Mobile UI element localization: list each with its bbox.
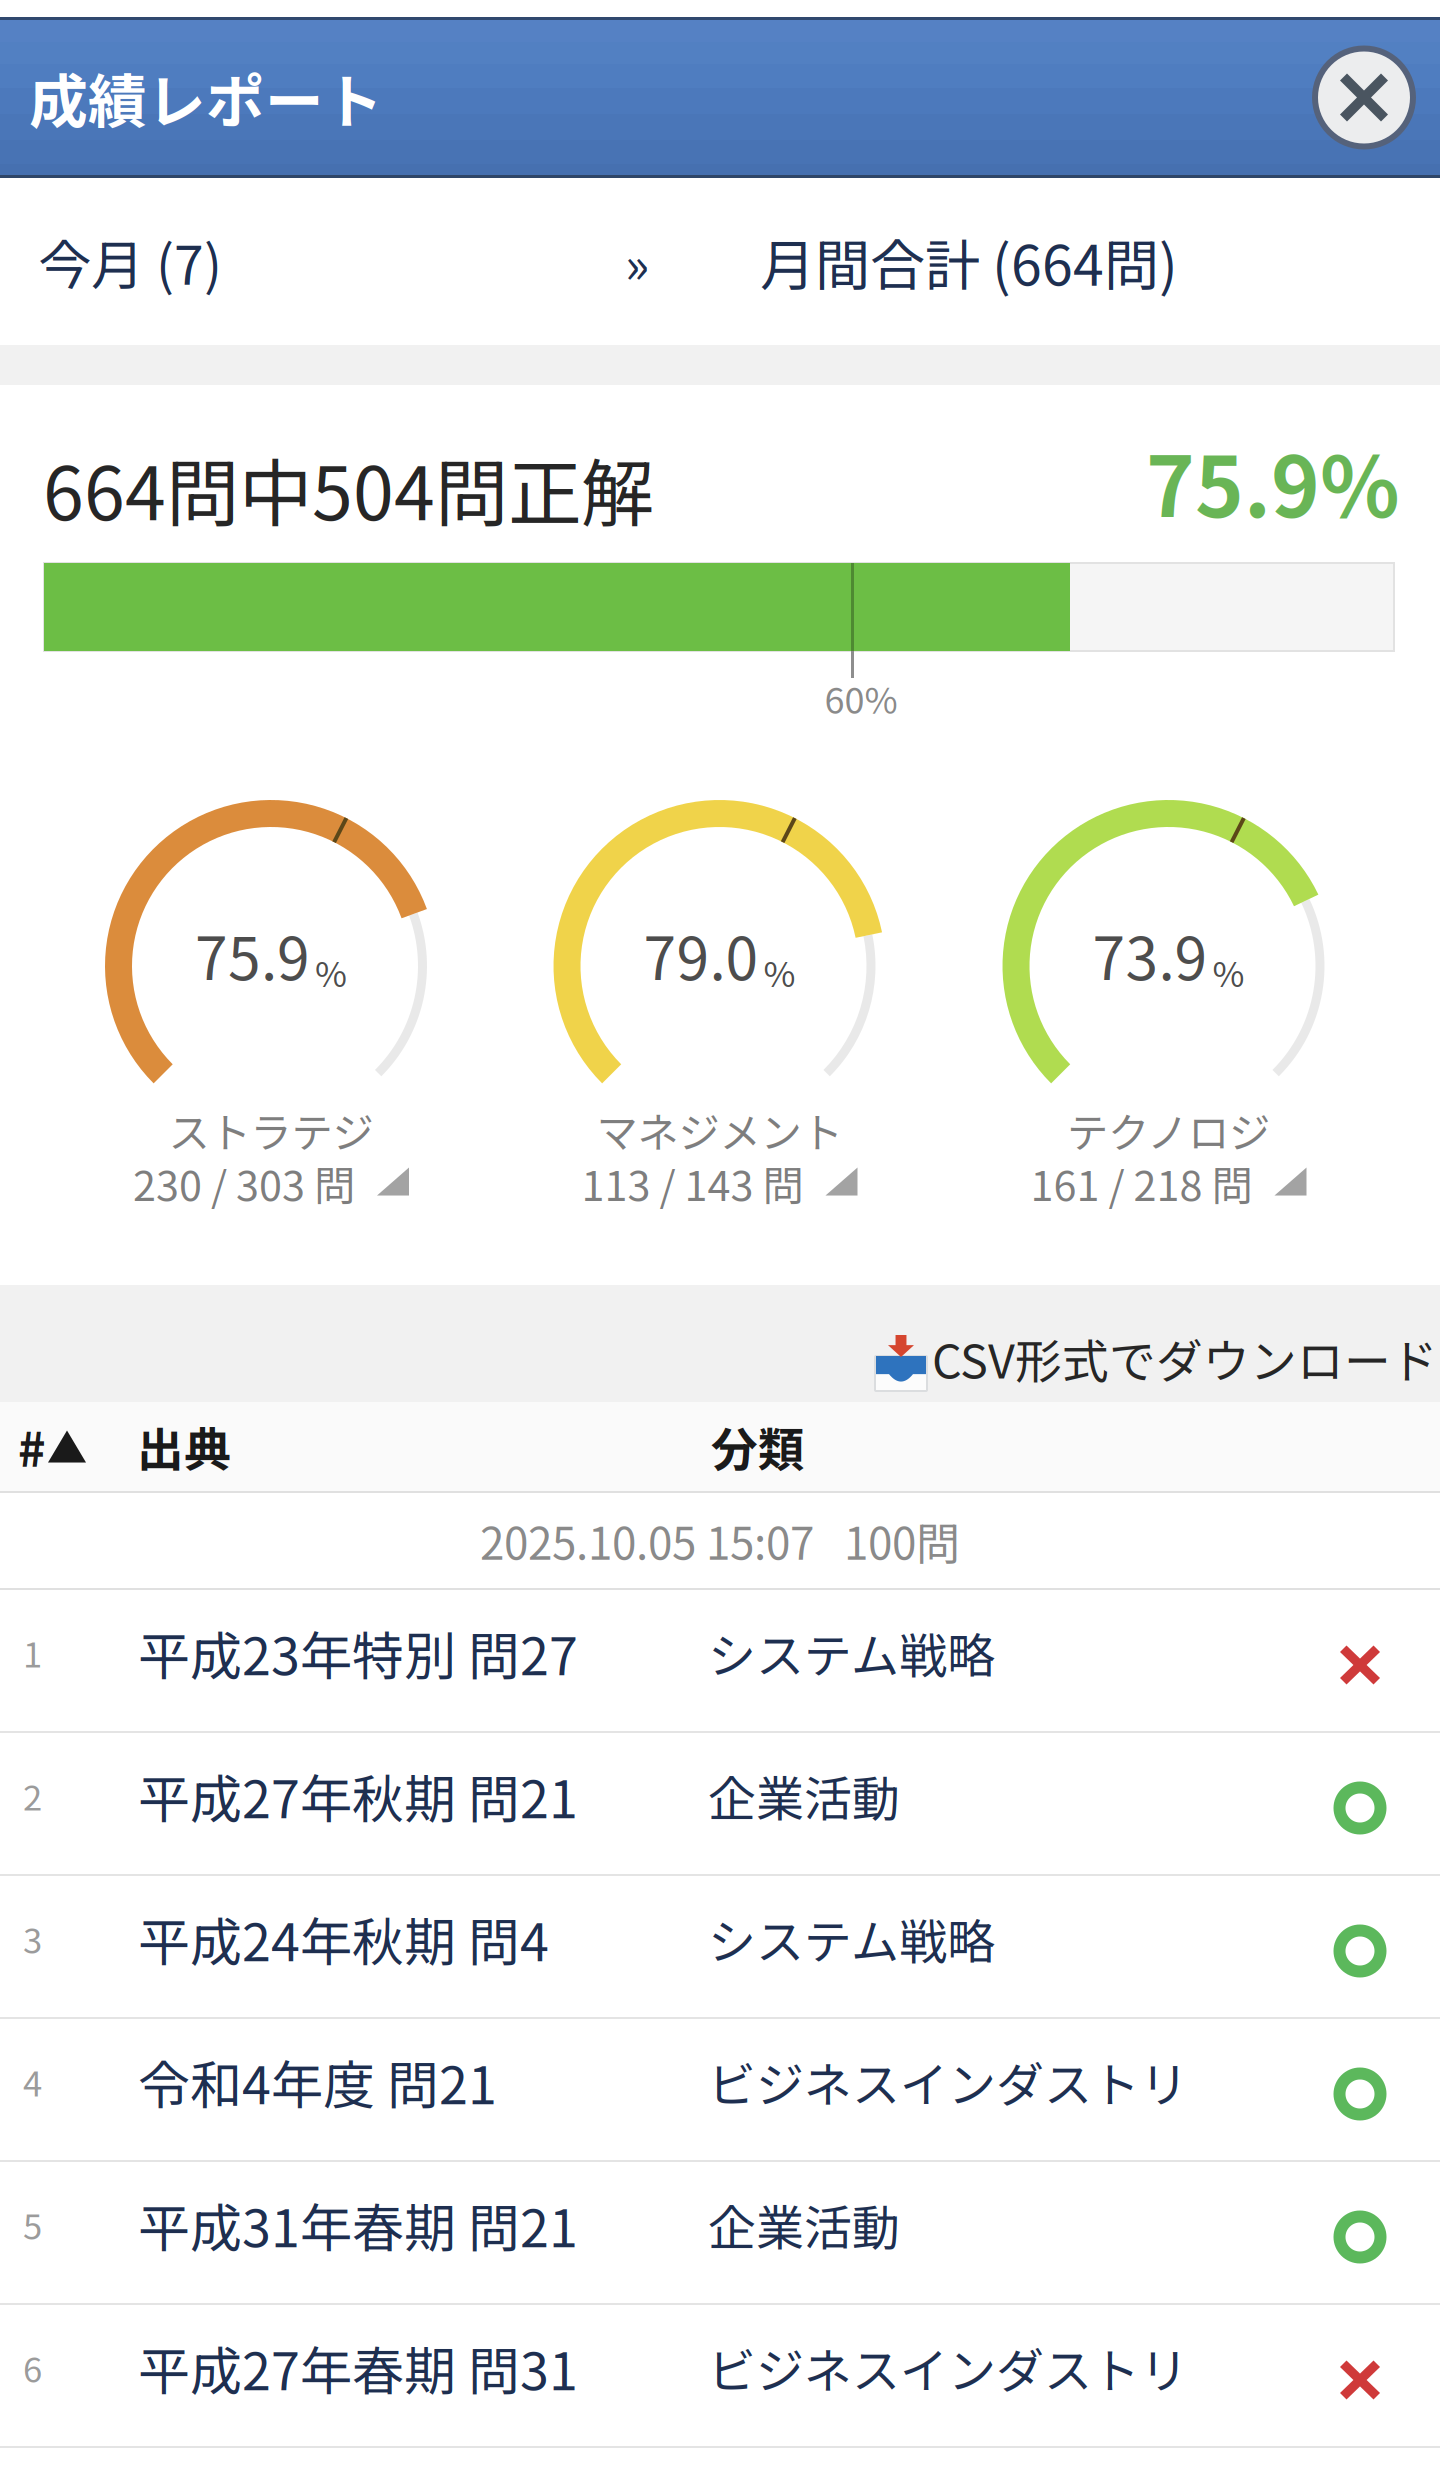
staticText: 75.9% — [1146, 422, 1400, 541]
button[interactable]: 4 — [0, 2019, 1440, 2162]
staticText: 73.9 — [1092, 912, 1207, 997]
staticText: 75.9 — [195, 912, 310, 997]
staticText: 230 / 303 問 — [133, 1153, 355, 1213]
button[interactable]: 月間合計 (664問) — [676, 178, 1178, 345]
staticText: 1 — [23, 1627, 42, 1678]
staticText: 平成23年特別 問27 — [138, 1615, 578, 1690]
staticText: 出典 — [137, 1413, 231, 1480]
staticText: % — [1212, 947, 1244, 997]
staticText: 6 — [23, 2342, 42, 2393]
staticText: 2 — [23, 1770, 42, 1821]
staticText: 平成24年秋期 問4 — [138, 1901, 549, 1976]
staticText: テクノロジ — [1067, 1100, 1270, 1160]
staticText: 成績レポート — [29, 55, 383, 140]
button[interactable]: 2 — [0, 1733, 1440, 1876]
staticText: 2025.10.05 15:07 100問 — [480, 1509, 960, 1572]
staticText: % — [763, 947, 795, 997]
staticText: 令和4年度 問21 — [138, 2044, 497, 2119]
staticText: CSV形式でダウンロード — [932, 1324, 1438, 1392]
staticText: 企業活動 — [708, 1761, 900, 1830]
button[interactable]: # — [0, 1402, 86, 1491]
staticText: システム戦略 — [708, 1618, 995, 1687]
staticText: 113 / 143 問 — [581, 1153, 803, 1213]
button[interactable]: 3 — [0, 1876, 1440, 2019]
staticText: 664問中504問正解 — [43, 435, 654, 541]
button[interactable]: 今月 (7) — [0, 178, 598, 345]
staticText: 今月 (7) — [38, 223, 222, 300]
staticText: 79.0 — [643, 912, 758, 997]
button[interactable]: 1 — [0, 1590, 1440, 1733]
button[interactable]: CSV形式でダウンロード — [872, 1312, 1440, 1402]
staticText: 平成31年春期 問21 — [138, 2187, 578, 2262]
staticText: # — [18, 1413, 46, 1480]
button[interactable]: 閉じる — [1308, 41, 1420, 153]
staticText: 60% — [824, 672, 897, 724]
staticText: 3 — [23, 1913, 42, 1964]
staticText: » — [625, 225, 649, 298]
button[interactable]: 6 — [0, 2305, 1440, 2448]
staticText: 161 / 218 問 — [1030, 1153, 1252, 1213]
staticText: 平成27年春期 問31 — [138, 2330, 578, 2405]
staticText: % — [315, 947, 347, 997]
staticText: ビジネスインダストリ — [708, 2047, 1188, 2116]
staticText: 企業活動 — [708, 2190, 900, 2259]
staticText: 5 — [23, 2199, 42, 2250]
staticText: マネジメント — [596, 1100, 842, 1160]
staticText: ストラテジ — [168, 1100, 373, 1160]
staticText: 平成27年秋期 問21 — [138, 1758, 578, 1833]
staticText: 4 — [23, 2056, 42, 2107]
staticText: ビジネスインダストリ — [708, 2333, 1188, 2402]
staticText: 分類 — [711, 1413, 805, 1480]
button[interactable]: 5 — [0, 2162, 1440, 2305]
staticText: 月間合計 (664問) — [760, 221, 1178, 301]
staticText: システム戦略 — [708, 1904, 995, 1973]
